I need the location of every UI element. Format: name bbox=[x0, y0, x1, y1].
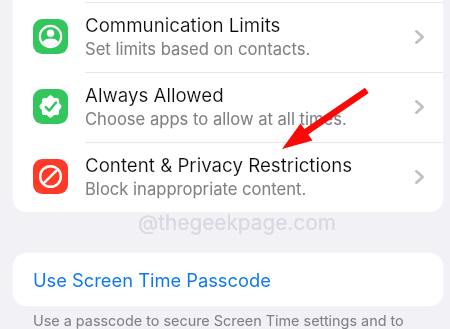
staticText: Block inappropriate content. bbox=[85, 179, 307, 199]
staticText: Content & Privacy Restrictions bbox=[85, 154, 353, 177]
staticText: @thegeekpage.com bbox=[138, 210, 336, 235]
staticText: Use Screen Time Passcode bbox=[33, 269, 271, 291]
staticText: Communication Limits bbox=[85, 14, 281, 37]
button[interactable]: Communication Limits bbox=[13, 2, 443, 72]
other: Open Content & Privacy Restrictions bbox=[415, 170, 424, 184]
staticText: Always Allowed bbox=[85, 84, 224, 107]
staticText: Choose apps to allow at all times. bbox=[85, 109, 347, 129]
staticText: Use a passcode to secure Screen Time set… bbox=[33, 312, 404, 329]
other: Open Always Allowed bbox=[415, 100, 424, 114]
button[interactable]: Content & Privacy Restrictions bbox=[13, 142, 443, 212]
button[interactable]: Use Screen Time Passcode bbox=[13, 253, 443, 306]
staticText: Set limits based on contacts. bbox=[85, 39, 311, 59]
button[interactable]: Always Allowed bbox=[13, 72, 443, 142]
other: Open Communication Limits bbox=[415, 30, 424, 44]
